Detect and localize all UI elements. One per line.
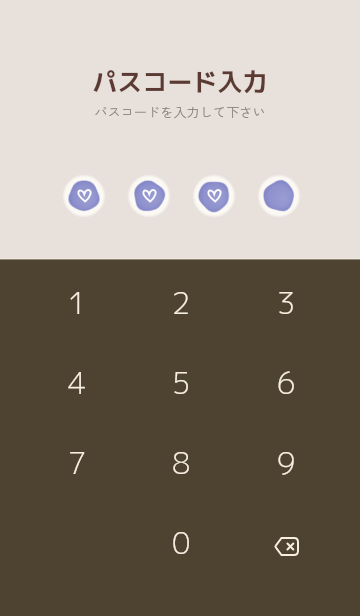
staticText: 5 xyxy=(172,362,191,404)
staticText: パスコードを入力して下さい xyxy=(0,102,360,121)
button[interactable]: 0 xyxy=(129,503,234,583)
button[interactable]: 8 xyxy=(129,423,234,503)
button[interactable]: 3 xyxy=(234,263,339,343)
button[interactable]: 4 xyxy=(25,343,129,423)
staticText: 1 xyxy=(68,282,87,324)
staticText: 3 xyxy=(277,282,296,324)
staticText: パスコード入力 xyxy=(0,64,360,99)
staticText: 8 xyxy=(172,442,191,484)
button[interactable]: 5 xyxy=(129,343,234,423)
staticText: 7 xyxy=(68,442,87,484)
button[interactable]: 6 xyxy=(234,343,339,423)
other: Backspace xyxy=(274,537,299,556)
button[interactable]: 7 xyxy=(25,423,129,503)
staticText: 4 xyxy=(68,362,87,404)
button[interactable]: Backspace xyxy=(234,503,339,583)
staticText: 9 xyxy=(277,442,296,484)
button[interactable]: 2 xyxy=(129,263,234,343)
staticText: 2 xyxy=(172,282,191,324)
staticText: 0 xyxy=(172,522,191,564)
button[interactable]: 9 xyxy=(234,423,339,503)
staticText: 6 xyxy=(277,362,296,404)
button[interactable]: 1 xyxy=(25,263,129,343)
